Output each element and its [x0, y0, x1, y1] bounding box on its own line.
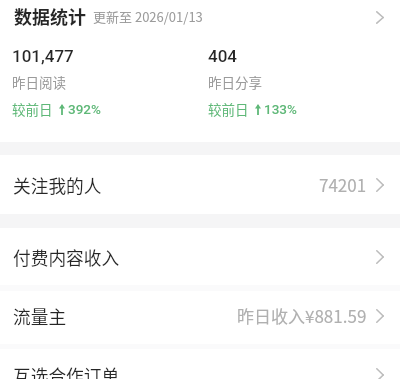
- staticText: 392%: [68, 101, 101, 117]
- staticText: 流量主: [13, 303, 67, 329]
- staticText: 133%: [264, 101, 297, 117]
- button[interactable]: 关注我的人: [0, 155, 400, 214]
- button[interactable]: 流量主: [0, 291, 400, 344]
- staticText: 101,477: [12, 46, 74, 66]
- staticText: 昨日分享: [208, 72, 262, 92]
- staticText: 404: [208, 46, 237, 66]
- button[interactable]: 付费内容收入: [0, 228, 400, 285]
- staticText: 付费内容收入: [13, 244, 120, 270]
- button[interactable]: 互选合作订单: [0, 349, 400, 379]
- staticText: 较前日: [208, 99, 249, 119]
- staticText: 更新至 2026/01/13: [93, 7, 203, 26]
- staticText: 数据统计: [14, 3, 86, 29]
- staticText: 互选合作订单: [13, 362, 120, 379]
- staticText: 74201: [319, 172, 367, 197]
- staticText: 昨日收入¥881.59: [237, 303, 367, 328]
- staticText: 较前日: [12, 99, 53, 119]
- staticText: 关注我的人: [13, 172, 102, 198]
- staticText: 昨日阅读: [12, 72, 66, 92]
- button[interactable]: 数据统计: [0, 0, 400, 31]
